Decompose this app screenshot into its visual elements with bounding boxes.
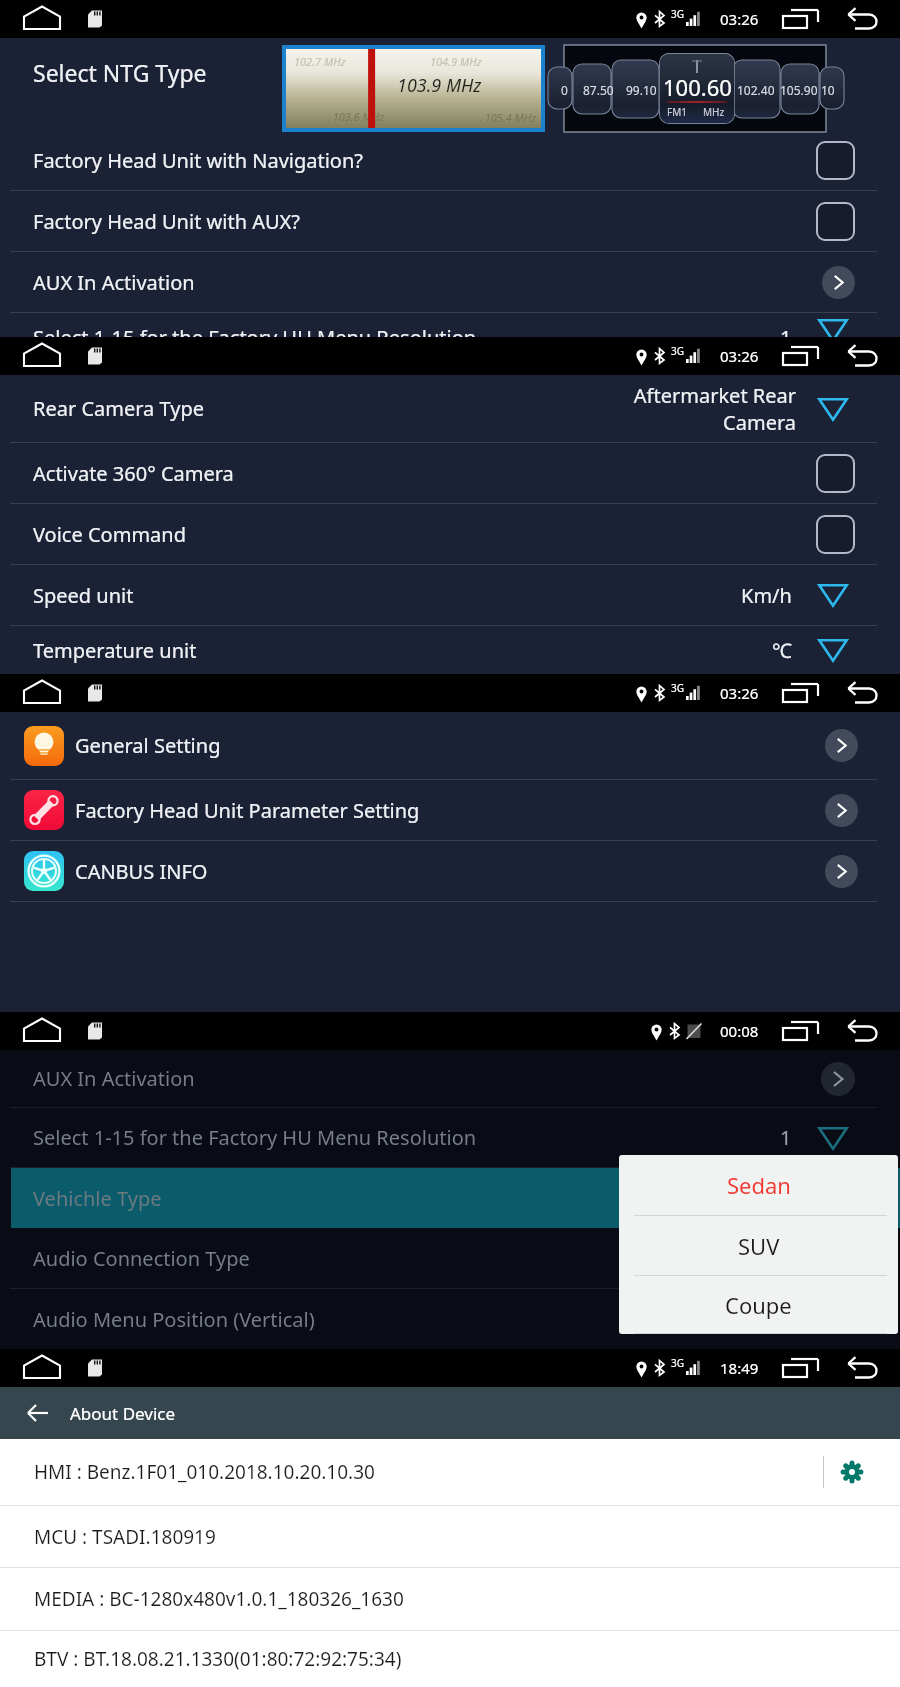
button[interactable]: Audio Connection Type — [0, 1228, 900, 1288]
staticText: 102.40 — [737, 82, 775, 98]
staticText: 100.60 — [663, 72, 732, 102]
button[interactable]: Back — [842, 8, 877, 30]
button[interactable]: Recent apps — [782, 1357, 819, 1379]
button[interactable]: Settings — [838, 1458, 866, 1486]
button[interactable]: Open — [825, 729, 858, 762]
staticText: . 103.6 MHz — [327, 109, 385, 124]
staticText: 0 — [561, 82, 568, 98]
button[interactable]: Dropdown — [811, 318, 855, 342]
button[interactable]: Open — [825, 794, 858, 827]
staticText: General Setting — [75, 732, 221, 759]
button[interactable]: Factory Head Unit with Navigation? — [0, 130, 900, 190]
button[interactable]: HMI : Benz.1F01_010.2018.10.20.10.30 — [0, 1439, 900, 1505]
staticText: MEDIA : BC-1280x480v1.0.1_180326_1630 — [34, 1586, 404, 1612]
button[interactable]: Select 1-15 for the Factory HU Menu Reso… — [0, 313, 900, 337]
staticText: Audio Menu Position (Vertical) — [33, 1306, 315, 1333]
button[interactable]: General Setting — [0, 712, 900, 779]
button[interactable]: Back — [20, 1395, 56, 1431]
staticText: SUV — [738, 1231, 780, 1261]
staticText: 03:26 — [720, 683, 759, 703]
button[interactable]: Back — [842, 1020, 877, 1042]
button[interactable]: Dropdown — [811, 578, 855, 612]
button[interactable]: Toggle — [816, 141, 855, 180]
button[interactable]: Home — [20, 1012, 64, 1050]
staticText: 3G — [671, 344, 684, 358]
button[interactable]: Recent apps — [782, 8, 819, 30]
button[interactable]: Back — [842, 682, 877, 704]
button[interactable]: Back — [842, 345, 877, 367]
staticText: HMI : Benz.1F01_010.2018.10.20.10.30 — [34, 1459, 375, 1485]
button[interactable]: BTV : BT.18.08.21.1330(01:80:72:92:75:34… — [0, 1631, 900, 1687]
button[interactable]: SUV — [619, 1216, 898, 1275]
staticText: 1 — [780, 1124, 792, 1151]
staticText: Select 1-15 for the Factory HU Menu Reso… — [33, 1124, 477, 1151]
button[interactable]: Open — [822, 266, 855, 299]
button[interactable]: Recent apps — [782, 682, 819, 704]
staticText: 102.7 MHz — [294, 54, 346, 69]
staticText: 1 — [780, 324, 792, 348]
staticText: . 105.4 MHz — [479, 110, 537, 125]
button[interactable]: Home — [20, 674, 64, 712]
staticText: Factory Head Unit with Navigation? — [33, 147, 363, 174]
button[interactable]: Factory Head Unit with AUX? — [0, 191, 900, 251]
staticText: AUX In Activation — [33, 1065, 195, 1092]
button[interactable]: Dropdown — [811, 1121, 855, 1155]
staticText: Audio Connection Type — [33, 1245, 250, 1272]
staticText: Aftermarket Rear Camera — [633, 382, 796, 436]
staticText: 10 — [821, 82, 835, 98]
staticText: 00:08 — [720, 1021, 759, 1041]
staticText: Coupe — [725, 1290, 792, 1320]
staticText: Select NTG Type — [33, 57, 207, 88]
button[interactable]: MCU : TSADI.180919 — [0, 1506, 900, 1567]
button[interactable]: Factory Head Unit Parameter Setting — [0, 780, 900, 840]
button[interactable]: Toggle — [816, 515, 855, 554]
staticText: Rear Camera Type — [33, 395, 205, 422]
button[interactable]: Coupe — [619, 1276, 898, 1333]
button[interactable]: AUX In Activation — [0, 252, 900, 312]
staticText: MHz — [703, 105, 725, 119]
button[interactable]: Recent apps — [782, 1020, 819, 1042]
staticText: Vehichle Type — [33, 1185, 162, 1212]
button[interactable]: Toggle — [816, 454, 855, 493]
staticText: 03:26 — [720, 9, 759, 29]
button[interactable]: Recent apps — [782, 345, 819, 367]
button[interactable]: MEDIA : BC-1280x480v1.0.1_180326_1630 — [0, 1568, 900, 1630]
button[interactable]: CANBUS INFO — [0, 841, 900, 901]
button[interactable]: Voice Command — [0, 504, 900, 564]
staticText: Voice Command — [33, 521, 186, 548]
staticText: 99.10 — [626, 82, 657, 98]
staticText: 03:26 — [720, 346, 759, 366]
button[interactable]: Sedan — [619, 1155, 898, 1215]
staticText: Temperature unit — [33, 637, 197, 664]
staticText: ℃ — [772, 637, 792, 664]
button[interactable]: Open — [825, 855, 858, 888]
button[interactable]: Dropdown — [811, 392, 855, 426]
staticText: Factory Head Unit Parameter Setting — [75, 797, 420, 824]
button[interactable]: Select 1-15 for the Factory HU Menu Reso… — [0, 1108, 900, 1167]
staticText: Activate 360° Camera — [33, 460, 234, 487]
button[interactable]: Open — [821, 1062, 855, 1096]
button[interactable]: Back — [842, 1357, 877, 1379]
button[interactable]: Home — [20, 337, 64, 375]
button[interactable]: Temperature unit — [0, 626, 900, 674]
button[interactable]: Rear Camera Type — [0, 375, 900, 442]
staticText: Factory Head Unit with AUX? — [33, 208, 301, 235]
staticText: Select 1-15 for the Factory HU Menu Reso… — [33, 324, 477, 348]
staticText: Speed unit — [33, 582, 134, 609]
button[interactable]: Home — [20, 1349, 64, 1387]
staticText: 3G — [671, 1356, 684, 1370]
button[interactable]: AUX In Activation — [0, 1050, 900, 1107]
button[interactable]: Dropdown — [811, 633, 855, 667]
button[interactable]: Toggle — [816, 202, 855, 241]
staticText: 3G — [671, 681, 684, 695]
button[interactable]: Activate 360° Camera — [0, 443, 900, 503]
staticText: 105.90 — [780, 82, 818, 98]
button[interactable]: Home — [20, 0, 64, 38]
staticText: Sedan — [727, 1170, 791, 1200]
staticText: BTV : BT.18.08.21.1330(01:80:72:92:75:34… — [34, 1646, 402, 1672]
staticText: 3G — [671, 7, 684, 21]
button[interactable]: Audio Menu Position (Vertical) — [0, 1289, 900, 1349]
staticText: AUX In Activation — [33, 269, 195, 296]
button[interactable]: Vehichle Type — [0, 1168, 900, 1228]
button[interactable]: Speed unit — [0, 565, 900, 625]
